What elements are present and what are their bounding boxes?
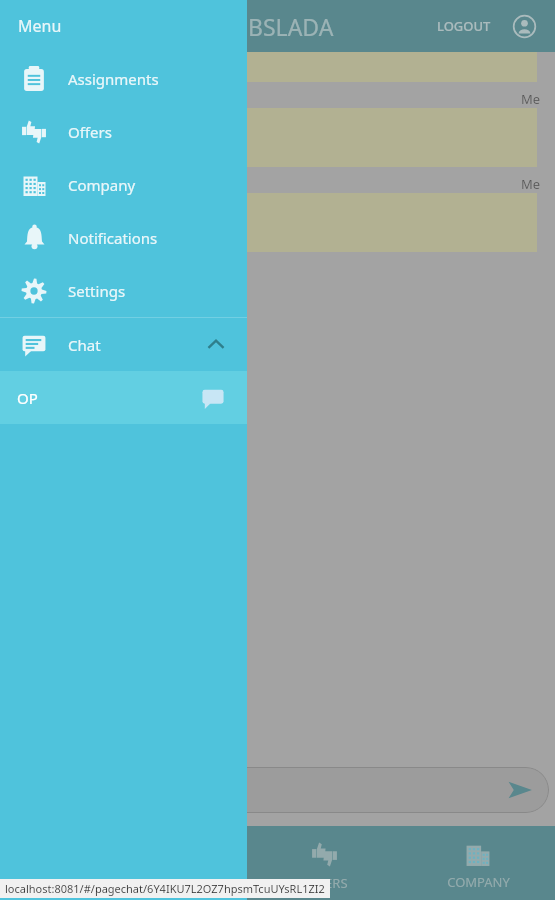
button[interactable]: Cześć bbox=[10, 108, 537, 167]
staticText: Menu bbox=[18, 15, 62, 37]
staticText: localhost:8081/#/pagechat/6Y4IKU7L2OZ7hp… bbox=[5, 881, 325, 896]
button[interactable]: Send bbox=[503, 773, 537, 807]
staticText: BSLADA bbox=[248, 11, 334, 42]
button[interactable]: COMPANY bbox=[401, 835, 555, 891]
button[interactable]: Notifications bbox=[0, 211, 247, 264]
staticText: 2020/12/18 bbox=[20, 224, 90, 242]
staticText: Assignments bbox=[68, 69, 159, 89]
staticText: Company bbox=[68, 175, 136, 195]
button[interactable]: Chat bbox=[0, 318, 247, 371]
button[interactable]: OFFERS bbox=[248, 835, 401, 892]
staticText: LOGOUT bbox=[437, 17, 491, 35]
button[interactable]: Offers bbox=[0, 105, 247, 158]
button[interactable]: Priviet bbox=[10, 193, 537, 252]
staticText: Me bbox=[521, 175, 541, 193]
staticText: Chat bbox=[68, 335, 101, 355]
staticText: Cześć bbox=[20, 116, 60, 136]
staticText: Me bbox=[521, 90, 541, 108]
staticText: Offers bbox=[68, 122, 112, 142]
staticText: COMPANY bbox=[447, 873, 510, 891]
staticText: Settings bbox=[68, 281, 126, 301]
staticText: OFFERS bbox=[301, 874, 348, 892]
button[interactable]: Send bbox=[4, 767, 549, 813]
button[interactable]: OP bbox=[0, 371, 247, 424]
button[interactable]: LOGOUT bbox=[429, 11, 499, 41]
button[interactable]: Account bbox=[505, 7, 543, 45]
button[interactable]: Company bbox=[0, 158, 247, 211]
staticText: 2020/12/18 bbox=[20, 139, 90, 157]
button[interactable]: 2020/12/18 bbox=[10, 52, 537, 82]
staticText: Notifications bbox=[68, 228, 158, 248]
staticText: 2020/12/18 bbox=[20, 54, 90, 72]
button[interactable]: Assignments bbox=[0, 52, 247, 105]
staticText: OP bbox=[17, 388, 38, 408]
button[interactable]: Settings bbox=[0, 264, 247, 317]
